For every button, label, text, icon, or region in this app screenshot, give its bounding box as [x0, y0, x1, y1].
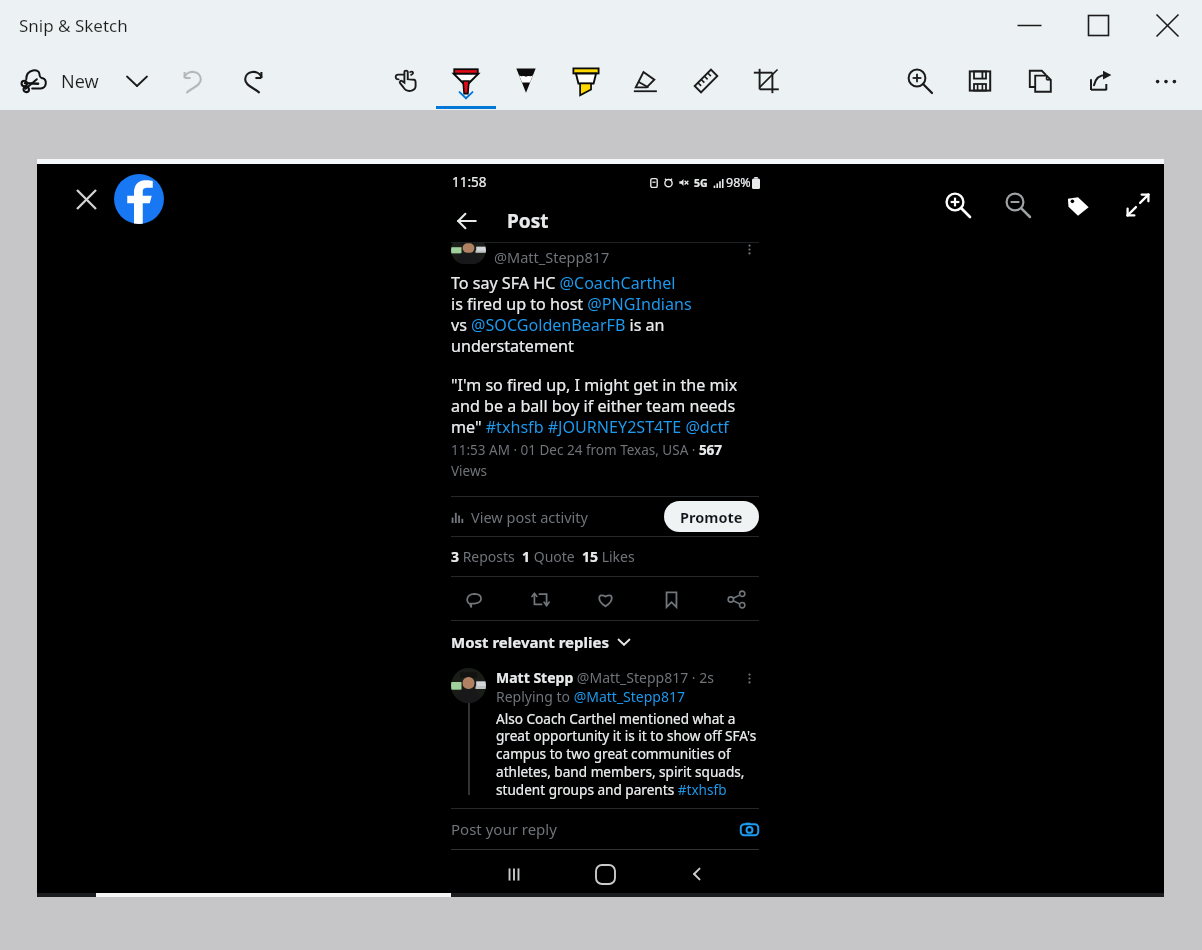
button[interactable]: Repost [519, 578, 561, 620]
staticText: Replying to @Matt_Stepp817 [496, 687, 685, 706]
button[interactable]: Ballpoint pen [436, 57, 496, 105]
staticText: "I'm so fired up, I might get in the mix… [451, 374, 738, 438]
button[interactable]: Bookmark [650, 578, 692, 620]
staticText: View post activity [471, 507, 588, 527]
staticText: Snip & Sketch [19, 14, 128, 37]
button[interactable]: Copy [1010, 57, 1070, 105]
button[interactable]: Minimize [995, 0, 1064, 51]
staticText: 98% [726, 174, 751, 191]
button[interactable]: Share [715, 578, 757, 620]
staticText: New [61, 69, 99, 94]
staticText: Most relevant replies [451, 632, 609, 652]
staticText: Post [507, 208, 549, 234]
staticText: 11:53 AM · 01 Dec 24 from Texas, USA · 5… [451, 441, 723, 480]
button[interactable]: Most relevant replies [451, 621, 765, 663]
staticText: To say SFA HC @CoachCarthel is fired up … [451, 272, 692, 357]
button[interactable]: Zoom out [988, 175, 1048, 235]
button[interactable]: Reply [453, 578, 495, 620]
button[interactable]: Recents [491, 851, 537, 897]
button[interactable]: Promote [664, 501, 759, 532]
staticText: Also Coach Carthel mentioned what a grea… [496, 709, 757, 799]
button[interactable]: Close [65, 178, 107, 220]
button[interactable]: Crop [736, 57, 796, 105]
button[interactable]: Touch writing [376, 57, 436, 105]
button[interactable]: Maximize [1064, 0, 1133, 51]
button[interactable]: Back [447, 201, 487, 241]
button[interactable]: Facebook [114, 174, 164, 224]
staticText: Matt Stepp @Matt_Stepp817 · 2s [496, 668, 714, 687]
button[interactable]: New options [115, 57, 159, 105]
button[interactable]: Close [1133, 0, 1202, 51]
button[interactable]: Zoom in [928, 175, 988, 235]
button[interactable]: Redo [231, 57, 275, 105]
staticText: 5G [694, 176, 708, 190]
staticText: @Matt_Stepp817 [494, 247, 610, 267]
button[interactable]: Eraser [616, 57, 676, 105]
button[interactable]: Expand [1108, 175, 1168, 235]
button[interactable]: Undo [171, 57, 215, 105]
button[interactable]: See more [1130, 57, 1202, 105]
staticText: Promote [680, 507, 743, 527]
staticText: Post your reply [451, 819, 557, 839]
button[interactable]: Post your reply [451, 809, 759, 849]
button[interactable]: Like [584, 578, 626, 620]
button[interactable]: Share [1070, 57, 1130, 105]
button[interactable]: New [13, 58, 105, 104]
staticText: 3 Reposts 1 Quote 15 Likes [451, 547, 635, 566]
button[interactable]: Home [582, 851, 628, 897]
button[interactable]: Save [950, 57, 1010, 105]
button[interactable]: Tag [1048, 175, 1108, 235]
staticText: 11:58 [452, 173, 487, 191]
button[interactable]: Pencil [496, 57, 556, 105]
button[interactable]: Ruler [676, 57, 736, 105]
button[interactable]: Zoom [890, 57, 950, 105]
button[interactable]: Highlighter [556, 57, 616, 105]
button[interactable]: Back [674, 851, 720, 897]
